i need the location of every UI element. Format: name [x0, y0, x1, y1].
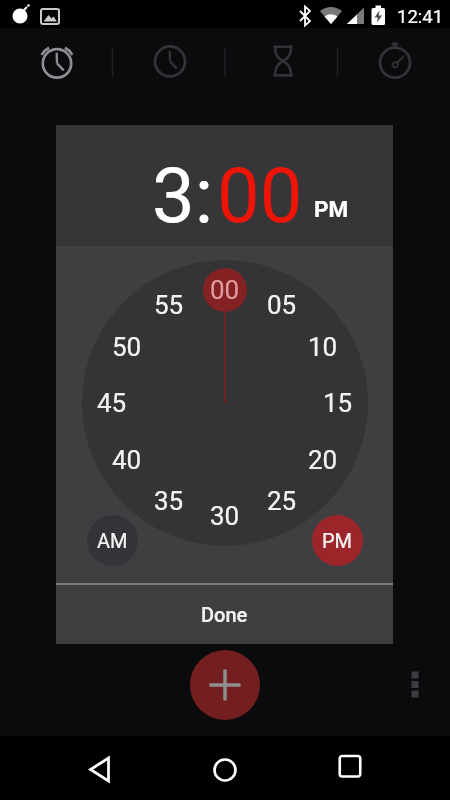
staticText: 00	[217, 151, 303, 240]
button[interactable]	[325, 742, 375, 792]
button[interactable]: Done	[56, 585, 393, 644]
button[interactable]: AM	[87, 515, 138, 566]
button[interactable]	[0, 28, 113, 96]
button[interactable]	[400, 660, 430, 710]
staticText: PM	[314, 196, 349, 222]
button[interactable]	[72, 742, 122, 792]
staticText: 20	[308, 445, 338, 475]
staticText: AM	[97, 529, 128, 552]
staticText: 55	[154, 290, 184, 320]
staticText: Done	[201, 603, 248, 626]
staticText: 12:41	[397, 6, 444, 28]
staticText: 30	[210, 501, 240, 531]
staticText: 25	[267, 486, 297, 516]
button[interactable]	[200, 742, 250, 792]
staticText: 00	[210, 275, 240, 305]
staticText: 3:	[152, 151, 214, 240]
staticText: 05	[267, 290, 297, 320]
staticText: 35	[154, 486, 184, 516]
staticText: PM	[322, 529, 353, 552]
staticText: 40	[112, 445, 142, 475]
staticText: 50	[112, 332, 142, 362]
button[interactable]	[190, 650, 260, 720]
button[interactable]	[226, 28, 339, 96]
button[interactable]	[113, 28, 226, 96]
staticText: 10	[308, 332, 338, 362]
button[interactable]	[339, 28, 450, 96]
button[interactable]: 00	[203, 268, 247, 312]
staticText: 45	[97, 388, 127, 418]
button[interactable]: PM	[312, 515, 363, 566]
staticText: 15	[323, 388, 353, 418]
